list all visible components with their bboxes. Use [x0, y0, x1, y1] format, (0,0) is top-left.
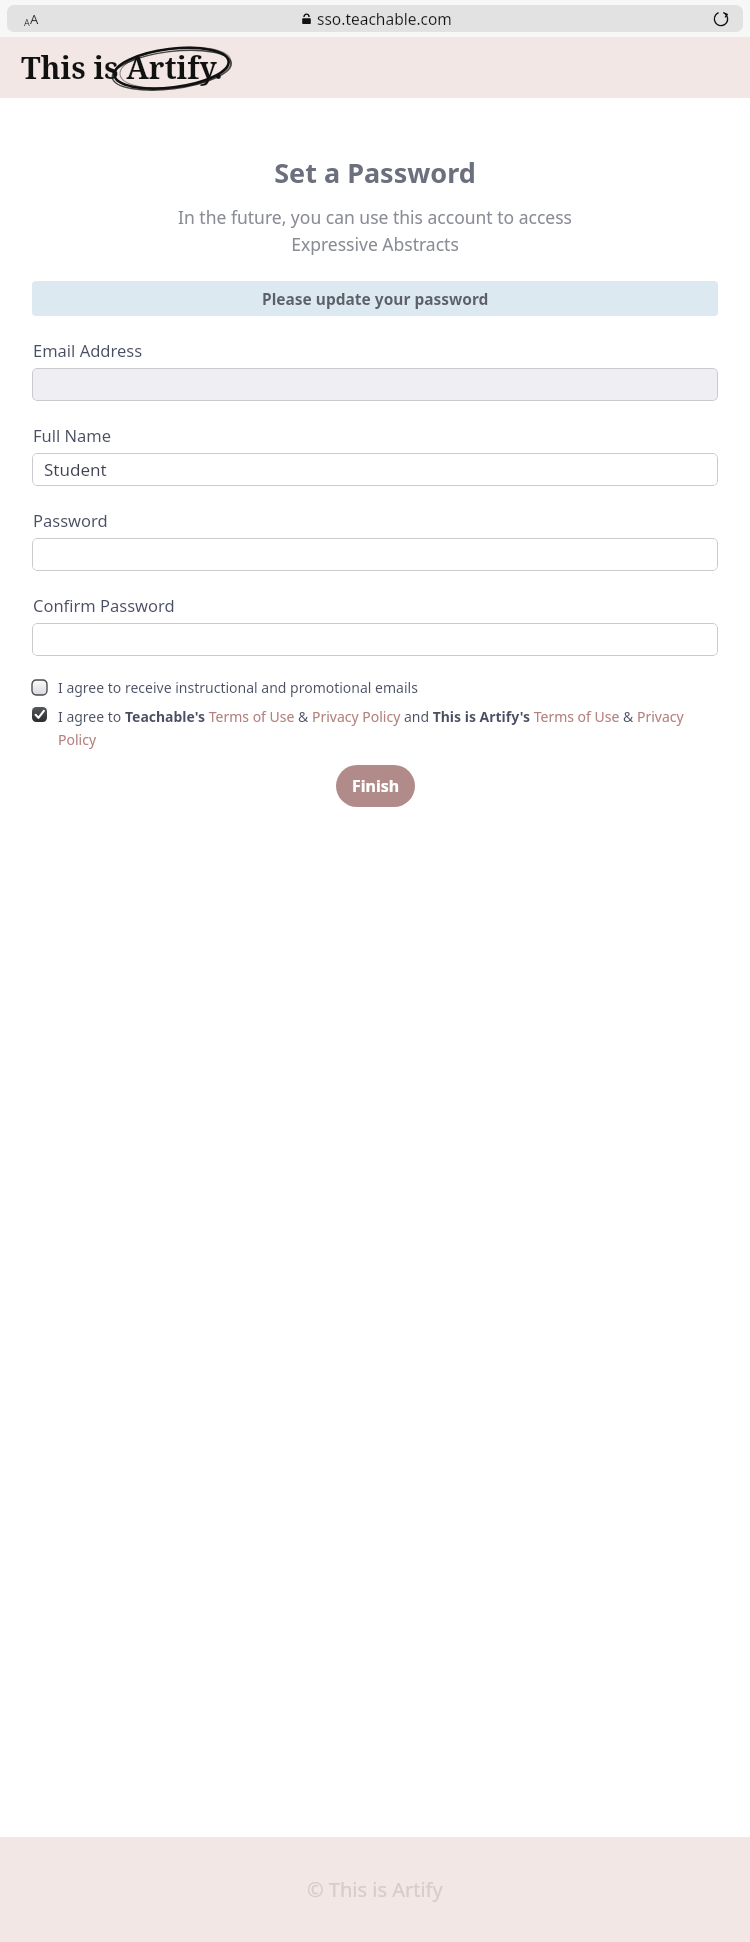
- staticText: Confirm Password: [33, 594, 175, 616]
- button[interactable]: [32, 538, 718, 571]
- staticText: Student: [44, 458, 107, 481]
- staticText: © This is Artify: [307, 1876, 443, 1903]
- staticText: Finish: [352, 775, 400, 797]
- staticText: Password: [33, 509, 108, 531]
- button[interactable]: Reload: [710, 8, 732, 30]
- button[interactable]: Text size: [18, 6, 44, 32]
- staticText: Email Address: [33, 339, 143, 361]
- staticText: I agree to receive instructional and pro…: [58, 678, 418, 697]
- staticText: In the future, you can use this account …: [26, 205, 724, 256]
- button[interactable]: Student: [32, 453, 718, 486]
- staticText: sso.teachable.com: [317, 8, 452, 29]
- staticText: A: [30, 10, 39, 28]
- staticText: Set a Password: [0, 154, 750, 191]
- button[interactable]: Finish: [336, 765, 415, 807]
- staticText: I agree to Teachable's Terms of Use & Pr…: [58, 707, 718, 749]
- button[interactable]: [32, 368, 718, 401]
- staticText: This is Artify.: [21, 47, 223, 88]
- button[interactable]: [32, 623, 718, 656]
- staticText: Please update your password: [262, 288, 489, 309]
- staticText: Full Name: [33, 424, 112, 446]
- button[interactable]: I agree to receive instructional and pro…: [32, 678, 718, 697]
- staticText: A: [24, 16, 30, 28]
- button[interactable]: I agree to Teachable's Terms of Use & Pr…: [32, 707, 718, 749]
